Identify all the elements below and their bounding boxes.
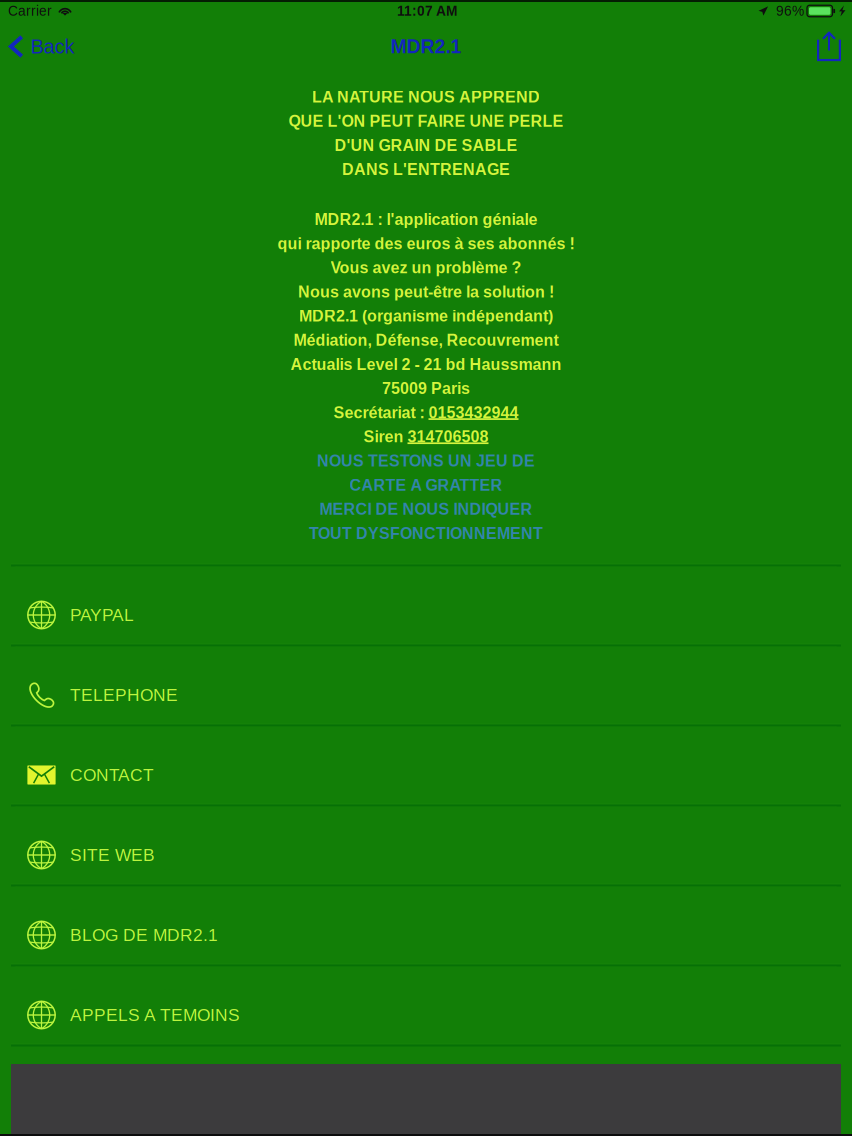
staticText: Actualis Level 2 - 21 bd Haussmann bbox=[290, 355, 561, 373]
staticText: MDR2.1 bbox=[390, 36, 461, 57]
button[interactable]: Back bbox=[0, 25, 83, 68]
button[interactable]: PAYPAL bbox=[11, 566, 841, 646]
staticText: Carrier bbox=[8, 3, 52, 19]
staticText: LA NATURE NOUS APPREND bbox=[312, 88, 540, 106]
staticText: Vous avez un problème ? bbox=[330, 259, 521, 277]
staticText: NOUS TESTONS UN JEU DE bbox=[317, 452, 535, 470]
staticText: Back bbox=[30, 35, 74, 58]
staticText: CARTE A GRATTER bbox=[349, 476, 502, 494]
button[interactable]: TELEPHONE bbox=[11, 646, 841, 726]
button[interactable]: Secrétariat : 0153432944 bbox=[11, 401, 841, 425]
staticText: Secrétariat : 0153432944 bbox=[333, 404, 518, 421]
button[interactable]: Siren 314706508 bbox=[11, 425, 841, 449]
staticText: 96% bbox=[776, 3, 804, 19]
staticText: 75009 Paris bbox=[382, 380, 470, 397]
staticText: MDR2.1 : l'application géniale bbox=[314, 210, 537, 228]
staticText: Siren 314706508 bbox=[363, 428, 488, 445]
staticText: DANS L'ENTRENAGE bbox=[342, 161, 510, 178]
button[interactable]: Share bbox=[805, 26, 852, 67]
staticText: 11:07 AM bbox=[397, 3, 457, 19]
staticText: MERCI DE NOUS INDIQUER bbox=[319, 500, 532, 518]
staticText: TOUT DYSFONCTIONNEMENT bbox=[309, 524, 543, 542]
staticText: BLOG DE MDR2.1 bbox=[70, 925, 218, 945]
button[interactable]: APPELS A TEMOINS bbox=[11, 966, 841, 1046]
staticText: QUE L'ON PEUT FAIRE UNE PERLE bbox=[288, 112, 563, 130]
staticText: MDR2.1 (organisme indépendant) bbox=[299, 307, 553, 325]
staticText: D'UN GRAIN DE SABLE bbox=[334, 136, 517, 154]
staticText: qui rapporte des euros à ses abonnés ! bbox=[277, 235, 574, 253]
staticText: Nous avons peut-être la solution ! bbox=[298, 283, 554, 301]
staticText: TELEPHONE bbox=[70, 685, 178, 705]
button[interactable]: BLOG DE MDR2.1 bbox=[11, 886, 841, 966]
button[interactable]: CONTACT bbox=[11, 726, 841, 806]
staticText: APPELS A TEMOINS bbox=[70, 1005, 240, 1025]
button[interactable]: SITE WEB bbox=[11, 806, 841, 886]
staticText: Médiation, Défense, Recouvrement bbox=[293, 331, 558, 349]
staticText: PAYPAL bbox=[70, 605, 134, 625]
staticText: SITE WEB bbox=[70, 845, 155, 865]
staticText: CONTACT bbox=[70, 765, 154, 785]
